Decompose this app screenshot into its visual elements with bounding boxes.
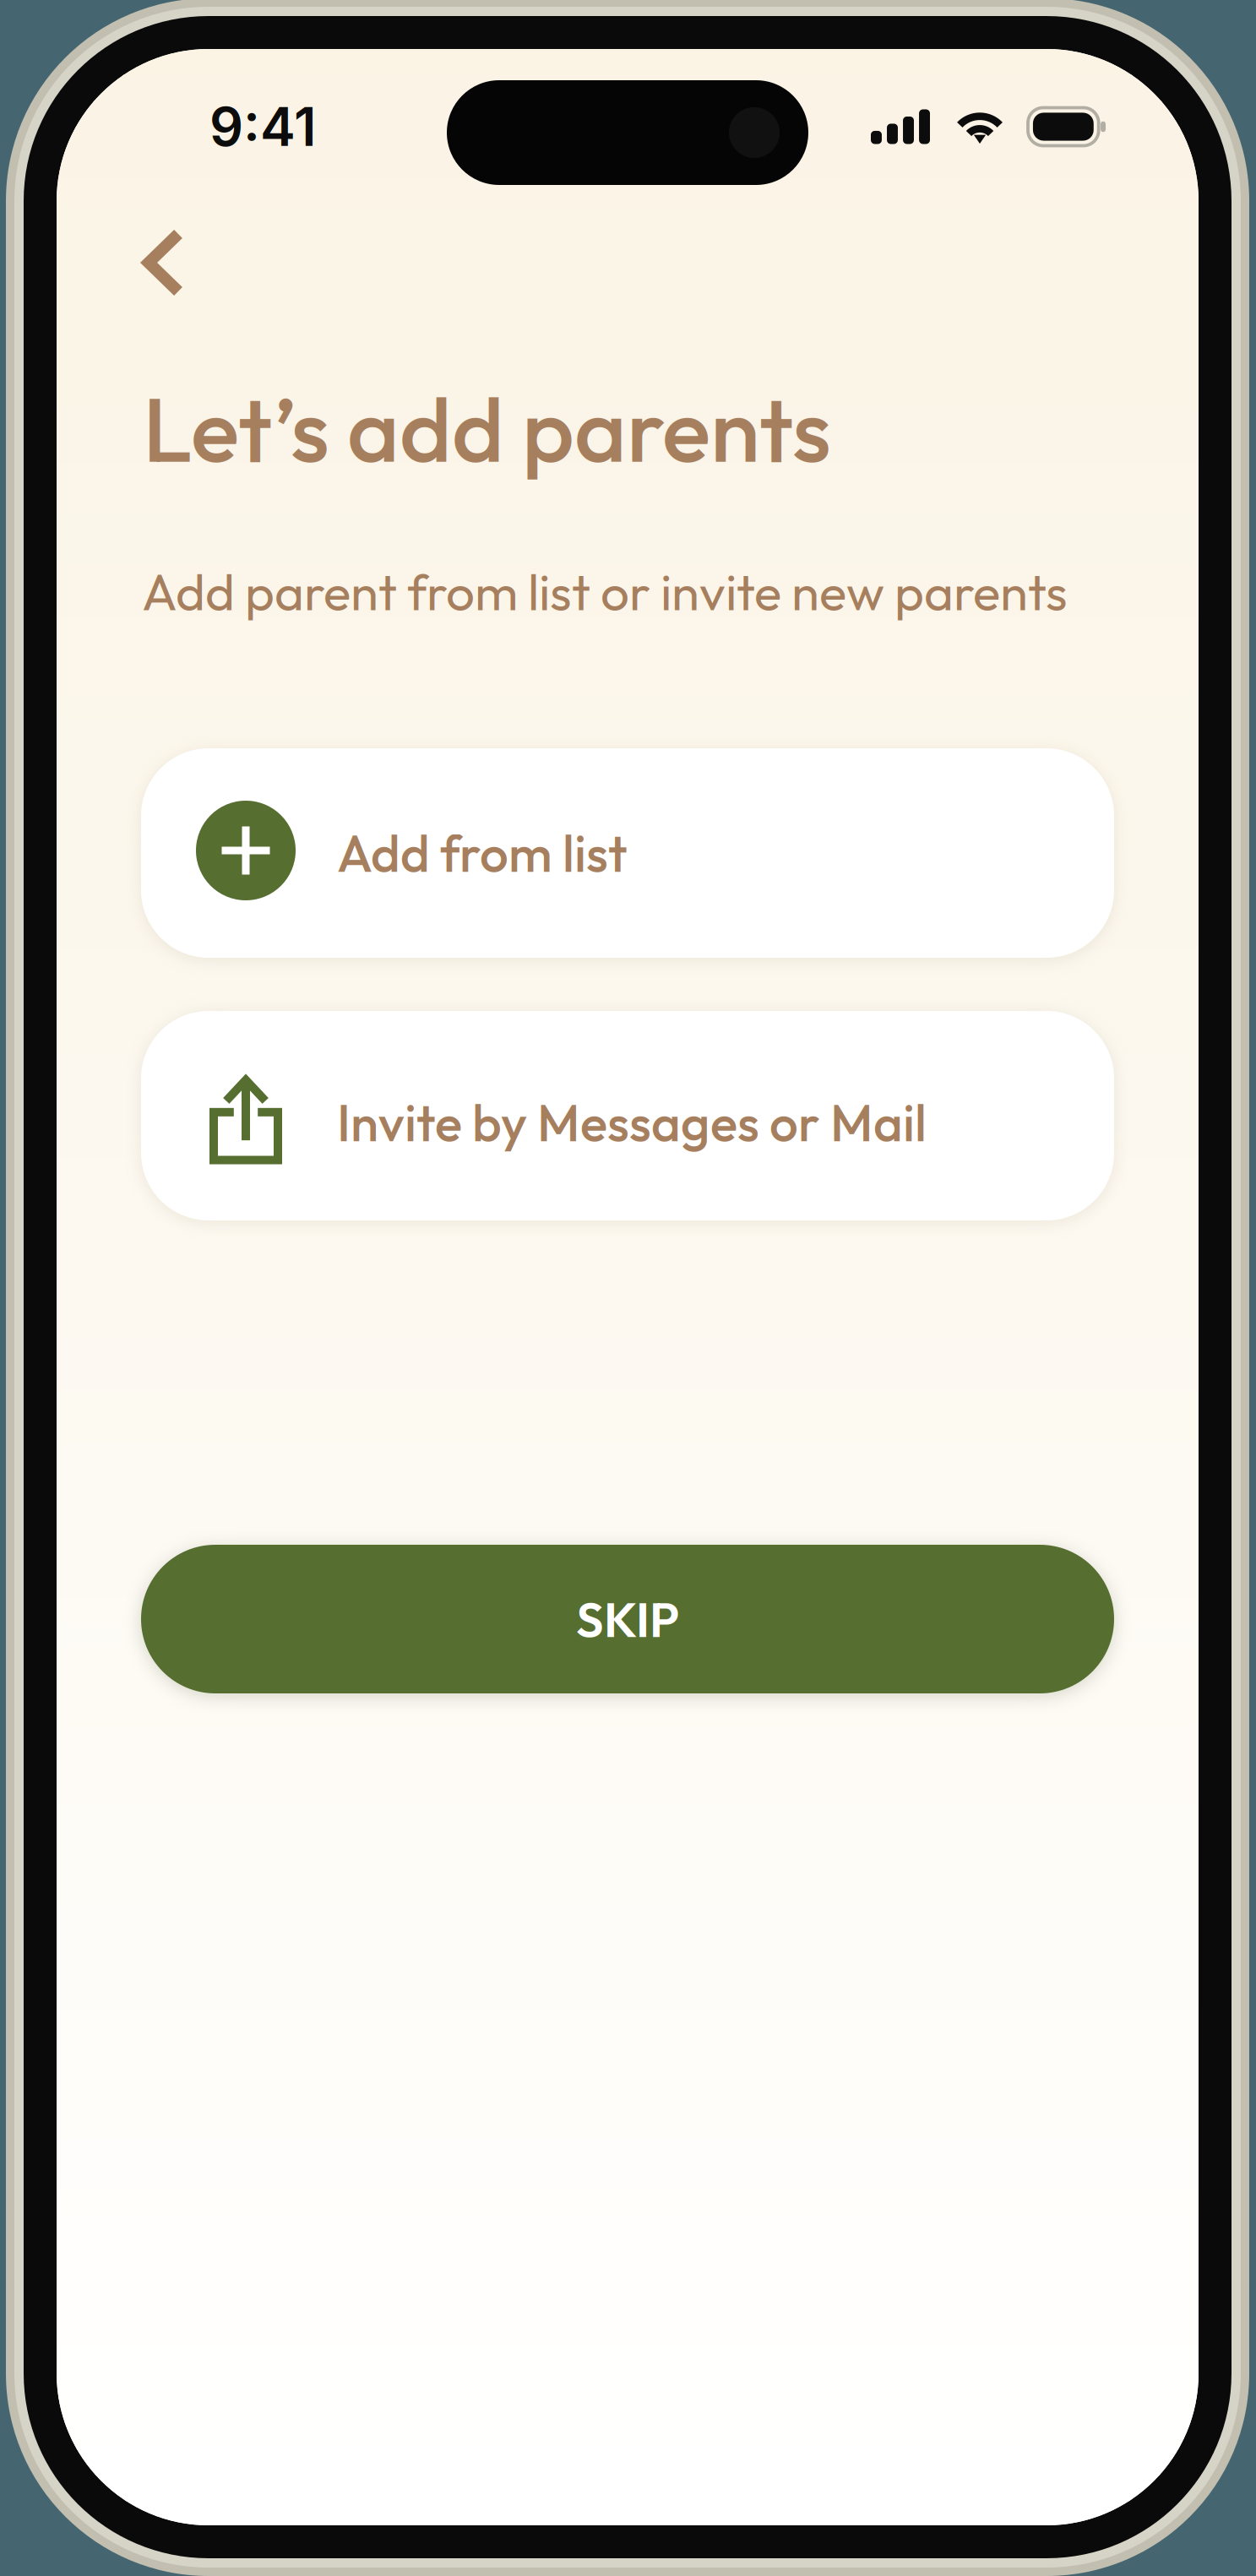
staticText: Invite by Messages or Mail bbox=[337, 1091, 927, 1154]
staticText: SKIP bbox=[576, 1589, 679, 1650]
staticText: Add parent from list or invite new paren… bbox=[142, 559, 1068, 623]
button[interactable]: Invite by Messages or Mail bbox=[141, 1011, 1114, 1220]
staticText: Add from list bbox=[337, 821, 628, 885]
staticText: 9:41 bbox=[209, 95, 316, 159]
staticText: Let’s add parents bbox=[143, 372, 831, 485]
button[interactable]: SKIP bbox=[141, 1545, 1114, 1693]
button[interactable]: Add from list bbox=[141, 748, 1114, 958]
button[interactable]: Back bbox=[57, 204, 245, 334]
